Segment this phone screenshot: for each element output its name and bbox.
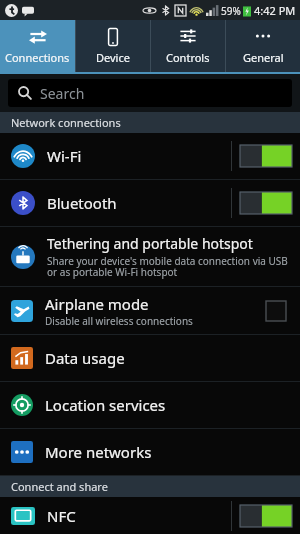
button[interactable]: Location services (0, 382, 300, 428)
staticText: Data usage (45, 348, 125, 368)
button[interactable]: Bluetooth (0, 180, 300, 226)
button[interactable]: Tethering and portable hotspot (0, 227, 300, 286)
staticText: Wi-Fi (47, 146, 231, 166)
button[interactable]: Bluetooth toggle on (240, 192, 292, 214)
button[interactable]: Airplane mode checkbox (266, 301, 286, 321)
button[interactable]: Wi-Fi toggle on (240, 145, 292, 167)
staticText: Tethering and portable hotspot (47, 234, 253, 253)
button[interactable]: Wi-Fi (0, 133, 300, 179)
button[interactable]: NFC toggle on (240, 505, 292, 527)
staticText: Controls (166, 50, 210, 65)
button[interactable]: Airplane mode (0, 287, 300, 334)
staticText: Search (40, 84, 85, 103)
staticText: Location services (45, 395, 166, 415)
staticText: Device (96, 50, 130, 65)
staticText: More networks (45, 442, 152, 462)
staticText: NFC (47, 506, 231, 526)
staticText: Bluetooth (47, 193, 231, 213)
staticText: General (243, 50, 284, 65)
staticText: 59% (221, 4, 241, 18)
button[interactable]: Connections (0, 20, 75, 72)
button[interactable]: NFC (0, 497, 300, 534)
button[interactable]: General (226, 20, 300, 72)
staticText: Connect and share (11, 479, 108, 494)
button[interactable]: More networks (0, 429, 300, 475)
staticText: Connections (5, 50, 70, 65)
button[interactable]: Device (76, 20, 150, 72)
staticText: Share your device's mobile data connecti… (47, 254, 292, 279)
staticText: Airplane mode (45, 294, 149, 314)
button[interactable]: Controls (151, 20, 225, 72)
staticText: 4:42 PM (254, 3, 296, 18)
button[interactable]: Data usage (0, 335, 300, 381)
staticText: Network connections (11, 115, 121, 130)
button[interactable]: Search (8, 79, 292, 107)
staticText: Disable all wireless connections (45, 314, 193, 328)
